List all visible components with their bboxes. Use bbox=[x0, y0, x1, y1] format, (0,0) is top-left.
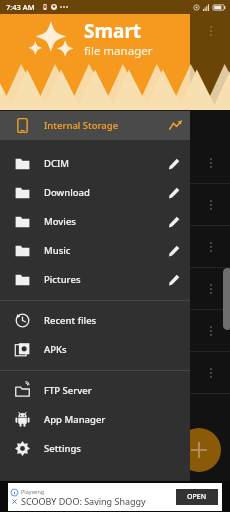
button[interactable]: Item options bbox=[206, 368, 216, 378]
button[interactable]: OPEN bbox=[176, 489, 218, 505]
button[interactable]: Item options bbox=[206, 242, 216, 252]
staticText: Internal Storage bbox=[44, 119, 160, 132]
button[interactable]: Recent files bbox=[0, 306, 190, 335]
staticText: Pictures bbox=[44, 273, 158, 286]
button[interactable]: Item options bbox=[206, 158, 216, 168]
button[interactable]: APKs bbox=[0, 335, 190, 364]
button[interactable]: Edit Music bbox=[158, 236, 190, 265]
staticText: Recent files bbox=[44, 314, 97, 327]
staticText: file manager bbox=[84, 43, 153, 59]
button[interactable]: Music bbox=[0, 236, 190, 265]
staticText: FTP Server bbox=[44, 384, 92, 397]
button[interactable]: Add bbox=[177, 428, 221, 472]
button[interactable]: Internal Storage bbox=[0, 111, 190, 140]
staticText: Smart bbox=[84, 18, 142, 44]
button[interactable]: Edit Movies bbox=[158, 207, 190, 236]
staticText: APKs bbox=[44, 343, 67, 356]
staticText: Playwing bbox=[21, 488, 45, 495]
button[interactable]: Edit DCIM bbox=[158, 149, 190, 178]
button[interactable]: Playwing bbox=[8, 483, 222, 511]
button[interactable]: Item options bbox=[206, 326, 216, 336]
staticText: Movies bbox=[44, 215, 158, 228]
staticText: Download bbox=[44, 186, 158, 199]
button[interactable]: Edit Download bbox=[158, 178, 190, 207]
button[interactable]: App Manager bbox=[0, 405, 190, 434]
staticText: 7:43 AM bbox=[6, 2, 35, 12]
button[interactable]: Item options bbox=[206, 284, 216, 294]
button[interactable]: FTP Server bbox=[0, 376, 190, 405]
button[interactable]: Download bbox=[0, 178, 190, 207]
staticText: OPEN bbox=[187, 492, 207, 502]
button[interactable]: DCIM bbox=[0, 149, 190, 178]
button[interactable]: Movies bbox=[0, 207, 190, 236]
staticText: DCIM bbox=[44, 157, 158, 170]
staticText: App Manager bbox=[44, 413, 106, 426]
button[interactable]: More options bbox=[206, 26, 216, 36]
button[interactable]: Settings bbox=[0, 434, 190, 463]
button[interactable]: Edit Pictures bbox=[158, 265, 190, 294]
staticText: SCOOBY DOO: Saving Shaggy bbox=[21, 495, 146, 507]
button[interactable]: Pictures bbox=[0, 265, 190, 294]
staticText: Music bbox=[44, 244, 158, 257]
button[interactable]: Item options bbox=[206, 200, 216, 210]
staticText: Settings bbox=[44, 442, 81, 455]
